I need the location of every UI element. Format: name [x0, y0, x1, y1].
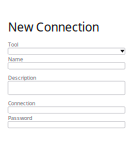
- staticText: Name: [8, 55, 23, 63]
- staticText: Description: [8, 74, 36, 81]
- button[interactable]: Name: [8, 54, 125, 69]
- staticText: New Connection: [8, 19, 99, 35]
- staticText: Password: [8, 114, 32, 121]
- button[interactable]: Password: [8, 113, 125, 128]
- button[interactable]: Description: [8, 69, 125, 95]
- staticText: Connection: [8, 100, 35, 107]
- staticText: Tool: [8, 41, 18, 48]
- button[interactable]: Connection: [8, 95, 125, 113]
- button[interactable]: Tool: [8, 35, 125, 54]
